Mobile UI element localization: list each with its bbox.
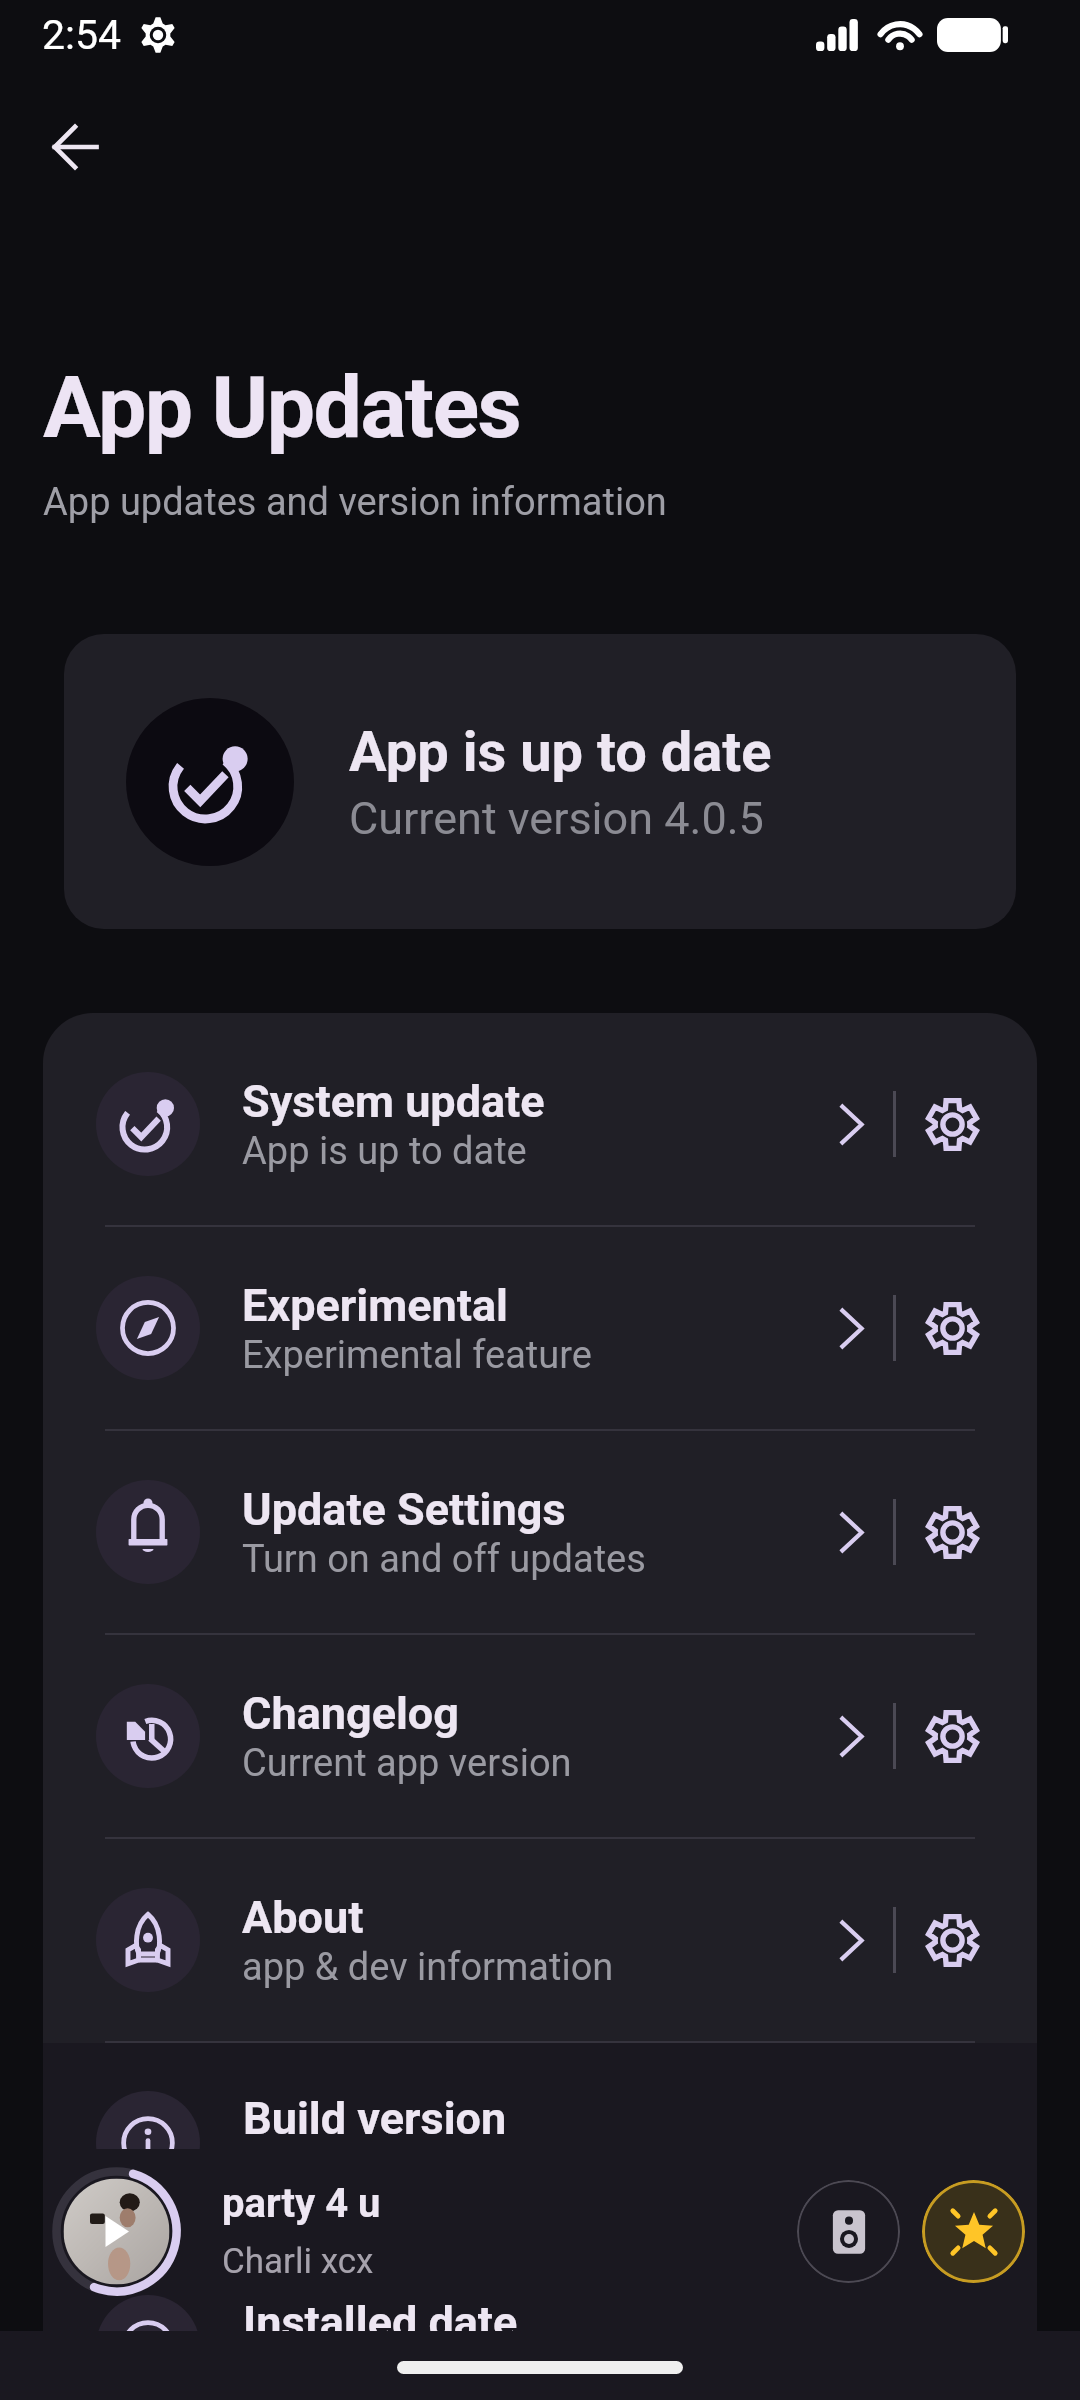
button[interactable]: About (43, 1839, 1037, 2041)
button[interactable]: Settings (918, 1498, 986, 1566)
staticText: 2:54 (42, 11, 122, 59)
staticText: Experimental feature (242, 1333, 592, 1378)
staticText: Build version (243, 2092, 507, 2145)
button[interactable]: Settings (918, 1906, 986, 1974)
staticText: System update (242, 1075, 545, 1128)
button[interactable]: System update (43, 1023, 1037, 1225)
staticText: Update Settings (242, 1483, 566, 1536)
button[interactable]: Open (820, 1296, 884, 1360)
button[interactable]: Experimental (43, 1227, 1037, 1429)
button[interactable]: Build version (43, 2043, 1037, 2245)
button[interactable]: Settings (918, 1090, 986, 1158)
button[interactable]: Open (820, 1500, 884, 1564)
staticText: Charli xcx (222, 2241, 374, 2282)
staticText: About (242, 1891, 364, 1944)
button[interactable]: Play (49, 2164, 184, 2299)
button[interactable]: Changelog (43, 1635, 1037, 1837)
staticText: Turn on and off updates (242, 1537, 646, 1582)
staticText: party 4 u (222, 2180, 381, 2227)
button[interactable]: Settings (918, 1294, 986, 1362)
button[interactable]: Update Settings (43, 1431, 1037, 1633)
staticText: App Updates (43, 357, 521, 458)
staticText: 12 Aug 2024 (242, 2328, 456, 2373)
button[interactable]: Open (820, 1092, 884, 1156)
staticText: Build version (242, 2095, 506, 2148)
button[interactable]: Back (40, 112, 110, 182)
staticText: Changelog (242, 1687, 459, 1740)
staticText: Current version 4.0.5 (349, 792, 764, 845)
staticText: app & dev information (242, 1945, 614, 1990)
button[interactable]: Magic (922, 2180, 1025, 2283)
staticText: App is up to date (242, 1129, 527, 1174)
button[interactable]: Output device (797, 2180, 900, 2283)
button[interactable]: Installed date (43, 2247, 1037, 2400)
button[interactable]: Open (820, 1908, 884, 1972)
button[interactable]: Settings (918, 1702, 986, 1770)
staticText: App updates and version information (43, 480, 667, 525)
staticText: Experimental (242, 1279, 508, 1332)
staticText: Current app version (242, 1741, 572, 1786)
button[interactable]: App is up to date (64, 634, 1016, 929)
staticText: Installed date (242, 2274, 517, 2327)
staticText: Installed date (243, 2296, 518, 2349)
staticText: 4.0.5 (242, 2149, 327, 2194)
button[interactable]: Open (820, 1704, 884, 1768)
staticText: App is up to date (349, 719, 772, 785)
